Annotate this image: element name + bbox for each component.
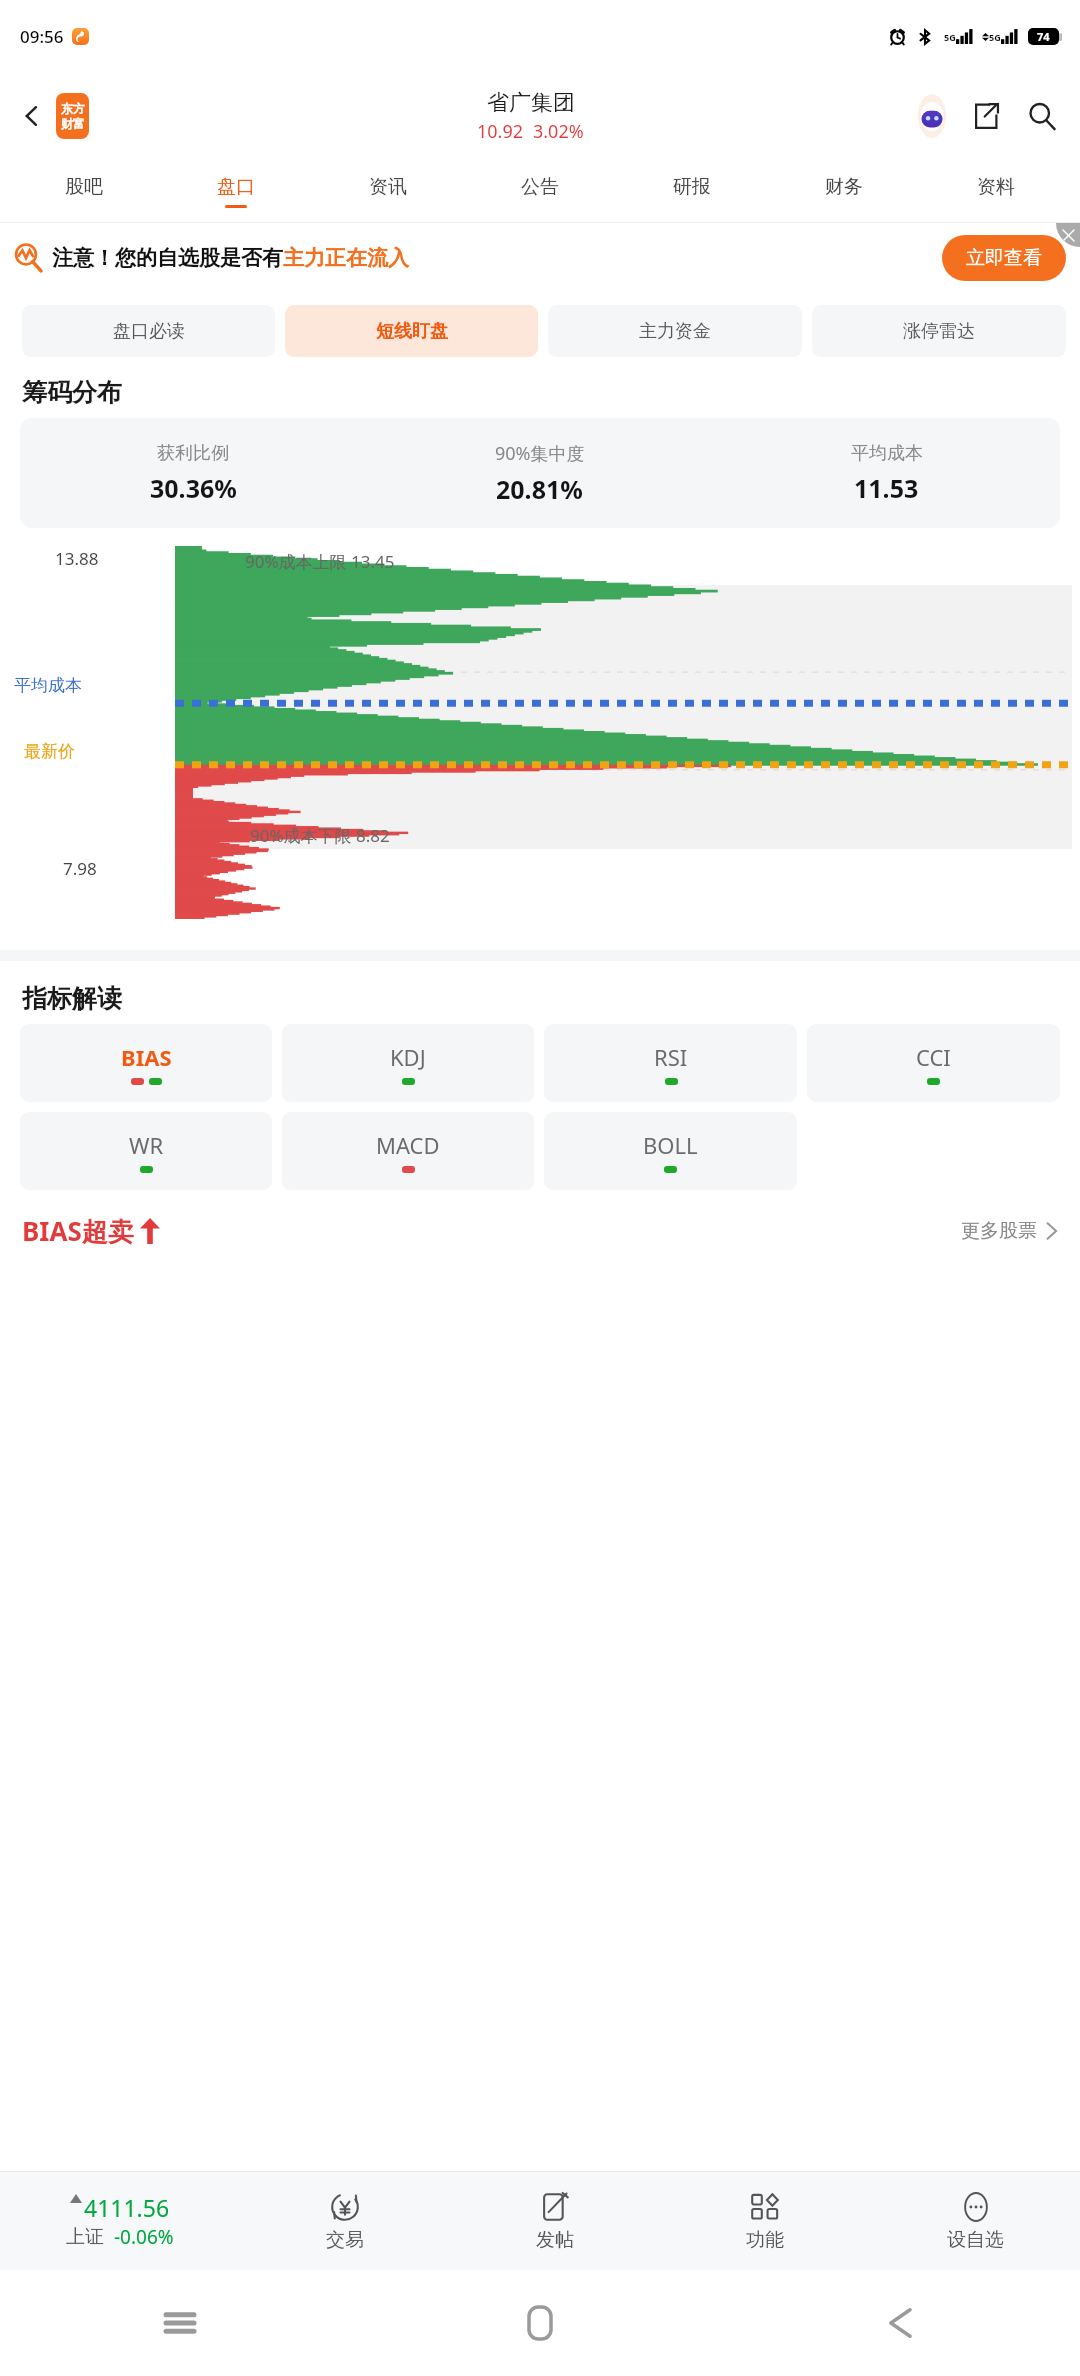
staticText: 涨停雷达 (903, 320, 975, 343)
staticText: 功能 (746, 2228, 784, 2252)
button[interactable]: KDJ (282, 1024, 534, 1102)
button[interactable]: 交易 (240, 2172, 450, 2270)
staticText: 资料 (977, 175, 1015, 199)
staticText: 设自选 (947, 2228, 1004, 2252)
button[interactable]: Back (720, 2270, 1080, 2376)
button[interactable]: Share (958, 88, 1014, 144)
staticText: 财富 (61, 116, 85, 131)
staticText: 研报 (673, 175, 711, 199)
button[interactable]: Back (8, 92, 56, 140)
staticText: 主力正在流入 (283, 245, 409, 271)
staticText: -0.06% (114, 2224, 174, 2250)
staticText: 注意！您的自选股是否有 (52, 245, 283, 271)
staticText: 10.92 (477, 119, 524, 144)
staticText: 更多股票 (961, 1219, 1037, 1243)
button[interactable]: 设自选 (870, 2172, 1080, 2270)
staticText: 公告 (521, 175, 559, 199)
button[interactable]: Home (360, 2270, 720, 2376)
button[interactable]: CCI (807, 1024, 1060, 1102)
button[interactable]: 4111.56 (0, 2172, 240, 2270)
staticText: 7.98 (63, 857, 97, 880)
staticText: KDJ (390, 1042, 426, 1072)
staticText: 平均成本 (14, 675, 82, 696)
staticText: BIAS (121, 1042, 172, 1072)
staticText: 5G (944, 31, 956, 43)
staticText: 20.81% (496, 472, 583, 506)
button[interactable]: 主力资金 (548, 305, 802, 357)
staticText: 09:56 (20, 25, 64, 48)
button[interactable]: BIAS超卖 (22, 1190, 1058, 1272)
button[interactable]: 盘口必读 (22, 305, 275, 357)
button[interactable]: BOLL (544, 1112, 797, 1190)
button[interactable]: 涨停雷达 (812, 305, 1066, 357)
button[interactable]: MACD (282, 1112, 534, 1190)
button[interactable]: 股吧 (8, 160, 160, 222)
button[interactable]: 盘口 (160, 160, 312, 222)
staticText: 发帖 (536, 2228, 574, 2252)
staticText: WR (129, 1130, 164, 1160)
staticText: 90%成本上限 13.45 (245, 550, 395, 573)
staticText: 立即查看 (966, 246, 1042, 270)
button[interactable]: 东方财富 (56, 93, 89, 139)
button[interactable]: 资讯 (312, 160, 464, 222)
button[interactable]: Search (1014, 88, 1070, 144)
staticText: 省广集团 (487, 89, 575, 117)
staticText: 获利比例 (157, 442, 229, 465)
staticText: 11.53 (854, 471, 919, 505)
button[interactable]: 立即查看 (942, 235, 1066, 281)
staticText: 资讯 (369, 175, 407, 199)
staticText: 东方 (61, 101, 85, 116)
staticText: RSI (654, 1042, 688, 1072)
button[interactable]: 资料 (920, 160, 1072, 222)
staticText: 交易 (326, 2228, 364, 2252)
button[interactable]: AI助手 (906, 90, 958, 142)
staticText: CCI (916, 1042, 951, 1072)
staticText: 指标解读 (22, 983, 122, 1014)
staticText: 筹码分布 (22, 377, 122, 408)
button[interactable]: 短线盯盘 (285, 305, 538, 357)
staticText: 90%集中度 (495, 441, 585, 466)
staticText: 13.88 (55, 547, 99, 570)
staticText: 5G (989, 31, 1001, 43)
staticText: 财务 (825, 175, 863, 199)
staticText: 主力资金 (639, 320, 711, 343)
staticText: 盘口必读 (113, 320, 185, 343)
staticText: 股吧 (65, 175, 103, 199)
staticText: 4111.56 (84, 2192, 170, 2223)
button[interactable]: 研报 (616, 160, 768, 222)
staticText: BOLL (643, 1130, 698, 1160)
button[interactable]: WR (20, 1112, 272, 1190)
button[interactable]: RSI (544, 1024, 797, 1102)
button[interactable]: Recents (0, 2270, 360, 2376)
staticText: MACD (376, 1130, 440, 1160)
button[interactable]: 获利比例 (20, 418, 1060, 528)
staticText: 30.36% (150, 471, 237, 505)
staticText: 短线盯盘 (376, 320, 448, 343)
button[interactable]: 公告 (464, 160, 616, 222)
staticText: 最新价 (24, 741, 75, 762)
staticText: 74 (1037, 29, 1050, 44)
button[interactable]: BIAS (20, 1024, 272, 1102)
button[interactable]: 功能 (660, 2172, 870, 2270)
staticText: 盘口 (217, 175, 255, 199)
staticText: BIAS超卖 (22, 1213, 134, 1249)
button[interactable]: 财务 (768, 160, 920, 222)
button[interactable]: Close (1056, 223, 1080, 247)
staticText: 上证 (66, 2225, 104, 2249)
staticText: 90%成本下限 8.82 (250, 824, 390, 847)
staticText: 3.02% (533, 119, 584, 144)
staticText: 平均成本 (851, 442, 923, 465)
button[interactable]: 发帖 (450, 2172, 660, 2270)
